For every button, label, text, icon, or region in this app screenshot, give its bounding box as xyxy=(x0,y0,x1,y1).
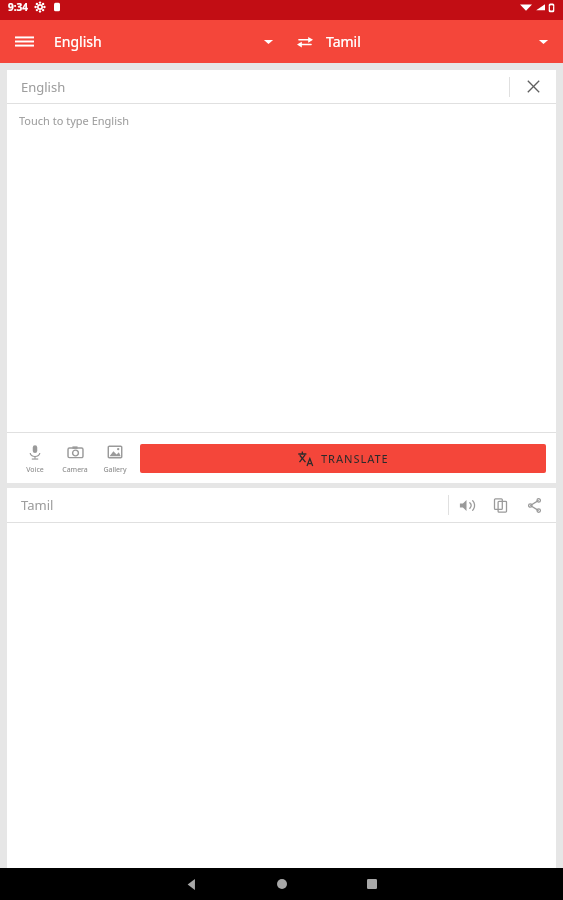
button[interactable]: Recent apps xyxy=(342,868,402,900)
staticText: TRANSLATE xyxy=(321,451,389,466)
button[interactable]: Back xyxy=(162,868,222,900)
staticText: 9:34 xyxy=(8,0,28,14)
button[interactable]: Tamil xyxy=(324,20,563,63)
button[interactable]: English xyxy=(48,20,286,63)
staticText: Voice xyxy=(26,465,44,475)
staticText: Touch to type English xyxy=(19,113,130,128)
button[interactable]: Voice xyxy=(15,442,55,475)
staticText: Tamil xyxy=(326,32,361,51)
button[interactable]: Open navigation menu xyxy=(0,20,48,63)
button[interactable]: Copy translation xyxy=(483,488,517,522)
staticText: Tamil xyxy=(21,496,54,514)
button[interactable]: Swap languages xyxy=(286,23,324,61)
button[interactable]: Listen xyxy=(449,488,483,522)
button[interactable]: Share translation xyxy=(517,488,551,522)
button[interactable]: Camera xyxy=(55,442,95,475)
button[interactable]: Home xyxy=(252,868,312,900)
button[interactable]: Touch to type English xyxy=(7,104,556,432)
button[interactable]: Gallery xyxy=(95,442,135,475)
staticText: Gallery xyxy=(103,465,127,475)
staticText: Camera xyxy=(62,465,88,475)
button[interactable]: TRANSLATE xyxy=(140,444,546,473)
button[interactable]: Clear text xyxy=(510,70,556,103)
staticText: English xyxy=(21,78,66,96)
staticText: English xyxy=(54,32,102,51)
